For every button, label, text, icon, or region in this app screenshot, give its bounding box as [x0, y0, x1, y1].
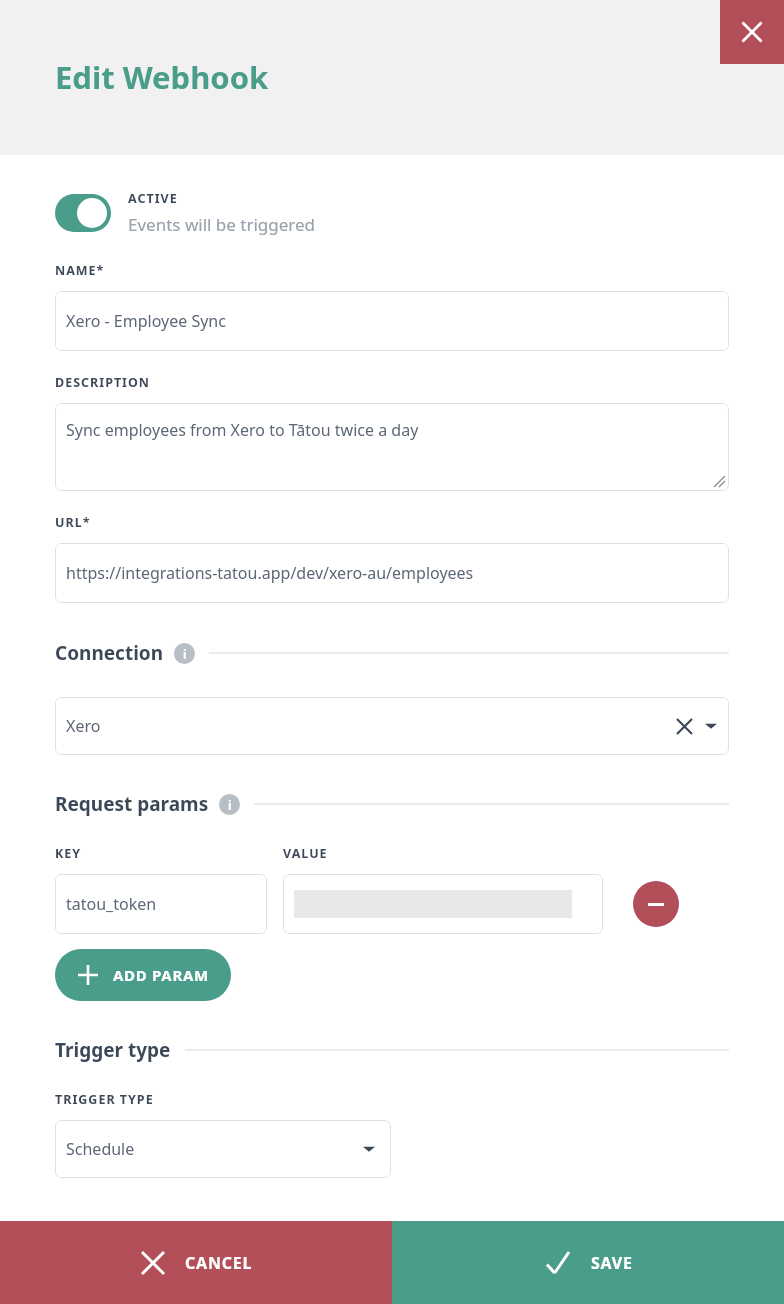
staticText: KEY: [55, 845, 283, 862]
staticText: tatou_token: [66, 893, 157, 915]
button[interactable]: Sync employees from Xero to Tātou twice …: [55, 403, 729, 491]
staticText: Xero - Employee Sync: [66, 310, 226, 332]
staticText: ACTIVE: [128, 190, 178, 207]
button[interactable]: Info: [174, 643, 195, 664]
button[interactable]: Remove param: [633, 881, 679, 927]
staticText: DESCRIPTION: [55, 374, 151, 391]
button[interactable]: Close: [720, 0, 784, 64]
button[interactable]: Clear: [673, 715, 695, 737]
staticText: VALUE: [283, 845, 328, 862]
staticText: Edit Webhook: [55, 56, 269, 98]
staticText: Trigger type: [55, 1037, 171, 1063]
button[interactable]: ADD PARAM: [55, 949, 231, 1001]
staticText: NAME*: [55, 262, 105, 279]
staticText: Connection: [55, 640, 164, 666]
staticText: SAVE: [591, 1252, 633, 1274]
button[interactable]: SAVE: [392, 1221, 784, 1304]
button[interactable]: Schedule: [55, 1120, 391, 1178]
staticText: CANCEL: [185, 1252, 253, 1274]
button[interactable]: Info: [219, 794, 240, 815]
staticText: Request params: [55, 791, 209, 817]
staticText: i: [228, 797, 232, 813]
staticText: https://integrations-tatou.app/dev/xero-…: [66, 562, 474, 584]
button[interactable]: Xero - Employee Sync: [55, 291, 729, 351]
button[interactable]: https://integrations-tatou.app/dev/xero-…: [55, 543, 729, 603]
staticText: URL*: [55, 514, 91, 531]
staticText: Sync employees from Xero to Tātou twice …: [66, 419, 419, 441]
button[interactable]: tatou_token: [55, 874, 267, 934]
button[interactable]: [283, 874, 603, 934]
staticText: TRIGGER TYPE: [55, 1091, 154, 1108]
staticText: i: [183, 646, 187, 662]
button[interactable]: ACTIVE: [55, 190, 316, 236]
staticText: Events will be triggered: [128, 213, 316, 236]
staticText: Schedule: [66, 1138, 135, 1160]
staticText: Xero: [66, 715, 101, 737]
button[interactable]: CANCEL: [0, 1221, 392, 1304]
button[interactable]: Xero: [55, 697, 729, 755]
staticText: ADD PARAM: [113, 965, 209, 985]
